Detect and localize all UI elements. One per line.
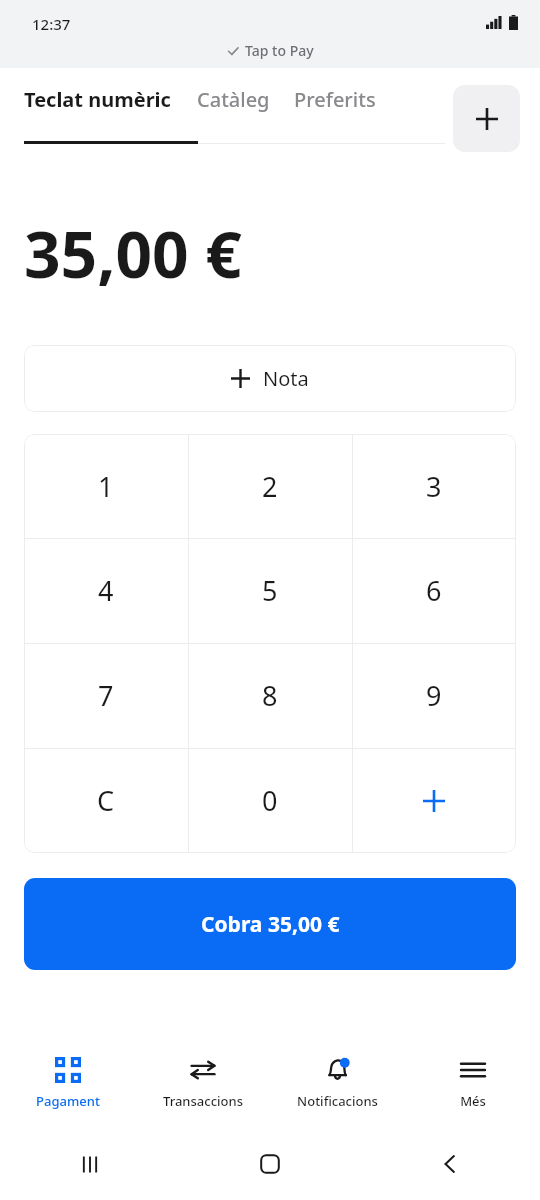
button[interactable]: Més — [405, 1051, 540, 1116]
button[interactable]: 7 — [24, 643, 188, 748]
button[interactable]: 9 — [352, 643, 516, 748]
staticText: 3 — [426, 468, 442, 505]
staticText: 2 — [262, 468, 278, 505]
staticText: 35,00 € — [24, 210, 242, 297]
button[interactable]: Preferits — [282, 86, 388, 113]
button[interactable]: Pagament — [0, 1051, 135, 1116]
button[interactable]: Recents — [0, 1128, 180, 1200]
button[interactable]: 2 — [188, 434, 352, 538]
button[interactable]: Back — [360, 1128, 540, 1200]
staticText: 9 — [426, 677, 442, 714]
staticText: C — [97, 782, 115, 819]
staticText: 12:37 — [32, 14, 71, 34]
staticText: Transaccions — [163, 1092, 243, 1110]
staticText: 0 — [262, 782, 278, 819]
staticText: 5 — [262, 572, 278, 609]
staticText: Notificacions — [297, 1092, 378, 1110]
staticText: Pagament — [36, 1092, 100, 1110]
staticText: 7 — [98, 677, 114, 714]
button[interactable]: Cobra 35,00 € — [24, 878, 516, 970]
staticText: Nota — [263, 365, 309, 392]
staticText: Cobra 35,00 € — [201, 910, 340, 939]
staticText: 1 — [98, 468, 114, 505]
staticText: 4 — [98, 572, 114, 609]
button[interactable]: Add — [453, 85, 520, 152]
button[interactable]: C — [24, 748, 188, 853]
button[interactable]: Notificacions — [270, 1051, 405, 1116]
button[interactable]: 6 — [352, 538, 516, 643]
button[interactable]: Transaccions — [135, 1051, 270, 1116]
staticText: Més — [460, 1092, 486, 1110]
button[interactable]: 5 — [188, 538, 352, 643]
staticText: Preferits — [294, 86, 376, 113]
staticText: Tap to Pay — [245, 41, 314, 60]
button[interactable]: 0 — [188, 748, 352, 853]
staticText: 6 — [426, 572, 442, 609]
button[interactable]: 4 — [24, 538, 188, 643]
button[interactable]: Nota — [24, 345, 516, 412]
staticText: Catàleg — [197, 86, 270, 113]
staticText: Teclat numèric — [24, 86, 171, 113]
button[interactable]: Teclat numèric — [0, 86, 185, 113]
button[interactable]: 1 — [24, 434, 188, 538]
button[interactable]: 8 — [188, 643, 352, 748]
button[interactable]: Home — [180, 1128, 360, 1200]
button[interactable] — [352, 748, 516, 853]
button[interactable]: Catàleg — [185, 86, 282, 113]
button[interactable]: 3 — [352, 434, 516, 538]
staticText: 8 — [262, 677, 278, 714]
